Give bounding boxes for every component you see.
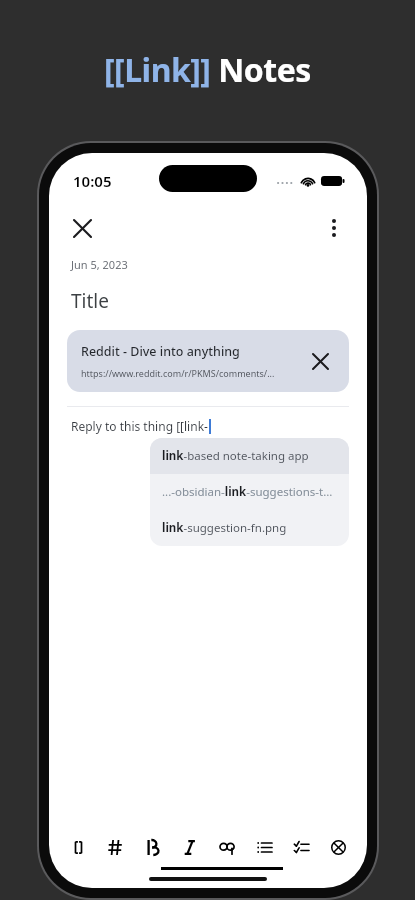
button[interactable]: Bulleted list	[249, 832, 279, 862]
button[interactable]: Bold	[137, 832, 167, 862]
button[interactable]: link-suggestion-fn.png	[150, 510, 349, 546]
button[interactable]: link-based note-taking app	[150, 438, 349, 474]
staticText: 10:05	[73, 171, 112, 191]
button[interactable]: Reddit - Dive into anything	[67, 330, 349, 392]
button[interactable]: ...-obsidian-link-suggestions-to-...	[150, 474, 349, 510]
staticText: link-suggestion-fn.png	[162, 520, 287, 536]
button[interactable]: Heading	[100, 832, 130, 862]
button[interactable]: Checklist	[286, 832, 316, 862]
staticText: [[Link]] Notes	[104, 48, 311, 92]
button[interactable]: Remove link	[305, 346, 335, 376]
staticText: Jun 5, 2023	[71, 257, 128, 272]
staticText: https://www.reddit.com/r/PKMS/comments/.…	[81, 367, 275, 379]
button[interactable]: Close formatting	[323, 832, 353, 862]
button[interactable]: Italic	[174, 832, 204, 862]
button[interactable]: Brackets	[63, 832, 93, 862]
button[interactable]: Close	[61, 207, 103, 249]
staticText: Title	[71, 288, 109, 314]
button[interactable]: Link	[212, 832, 242, 862]
staticText: Reddit - Dive into anything	[81, 343, 240, 360]
staticText: Reply to this thing [[link-	[71, 418, 208, 434]
staticText: ...-obsidian-link-suggestions-to-...	[162, 484, 337, 500]
button[interactable]: More options	[313, 207, 355, 249]
staticText: link-based note-taking app	[162, 448, 309, 464]
